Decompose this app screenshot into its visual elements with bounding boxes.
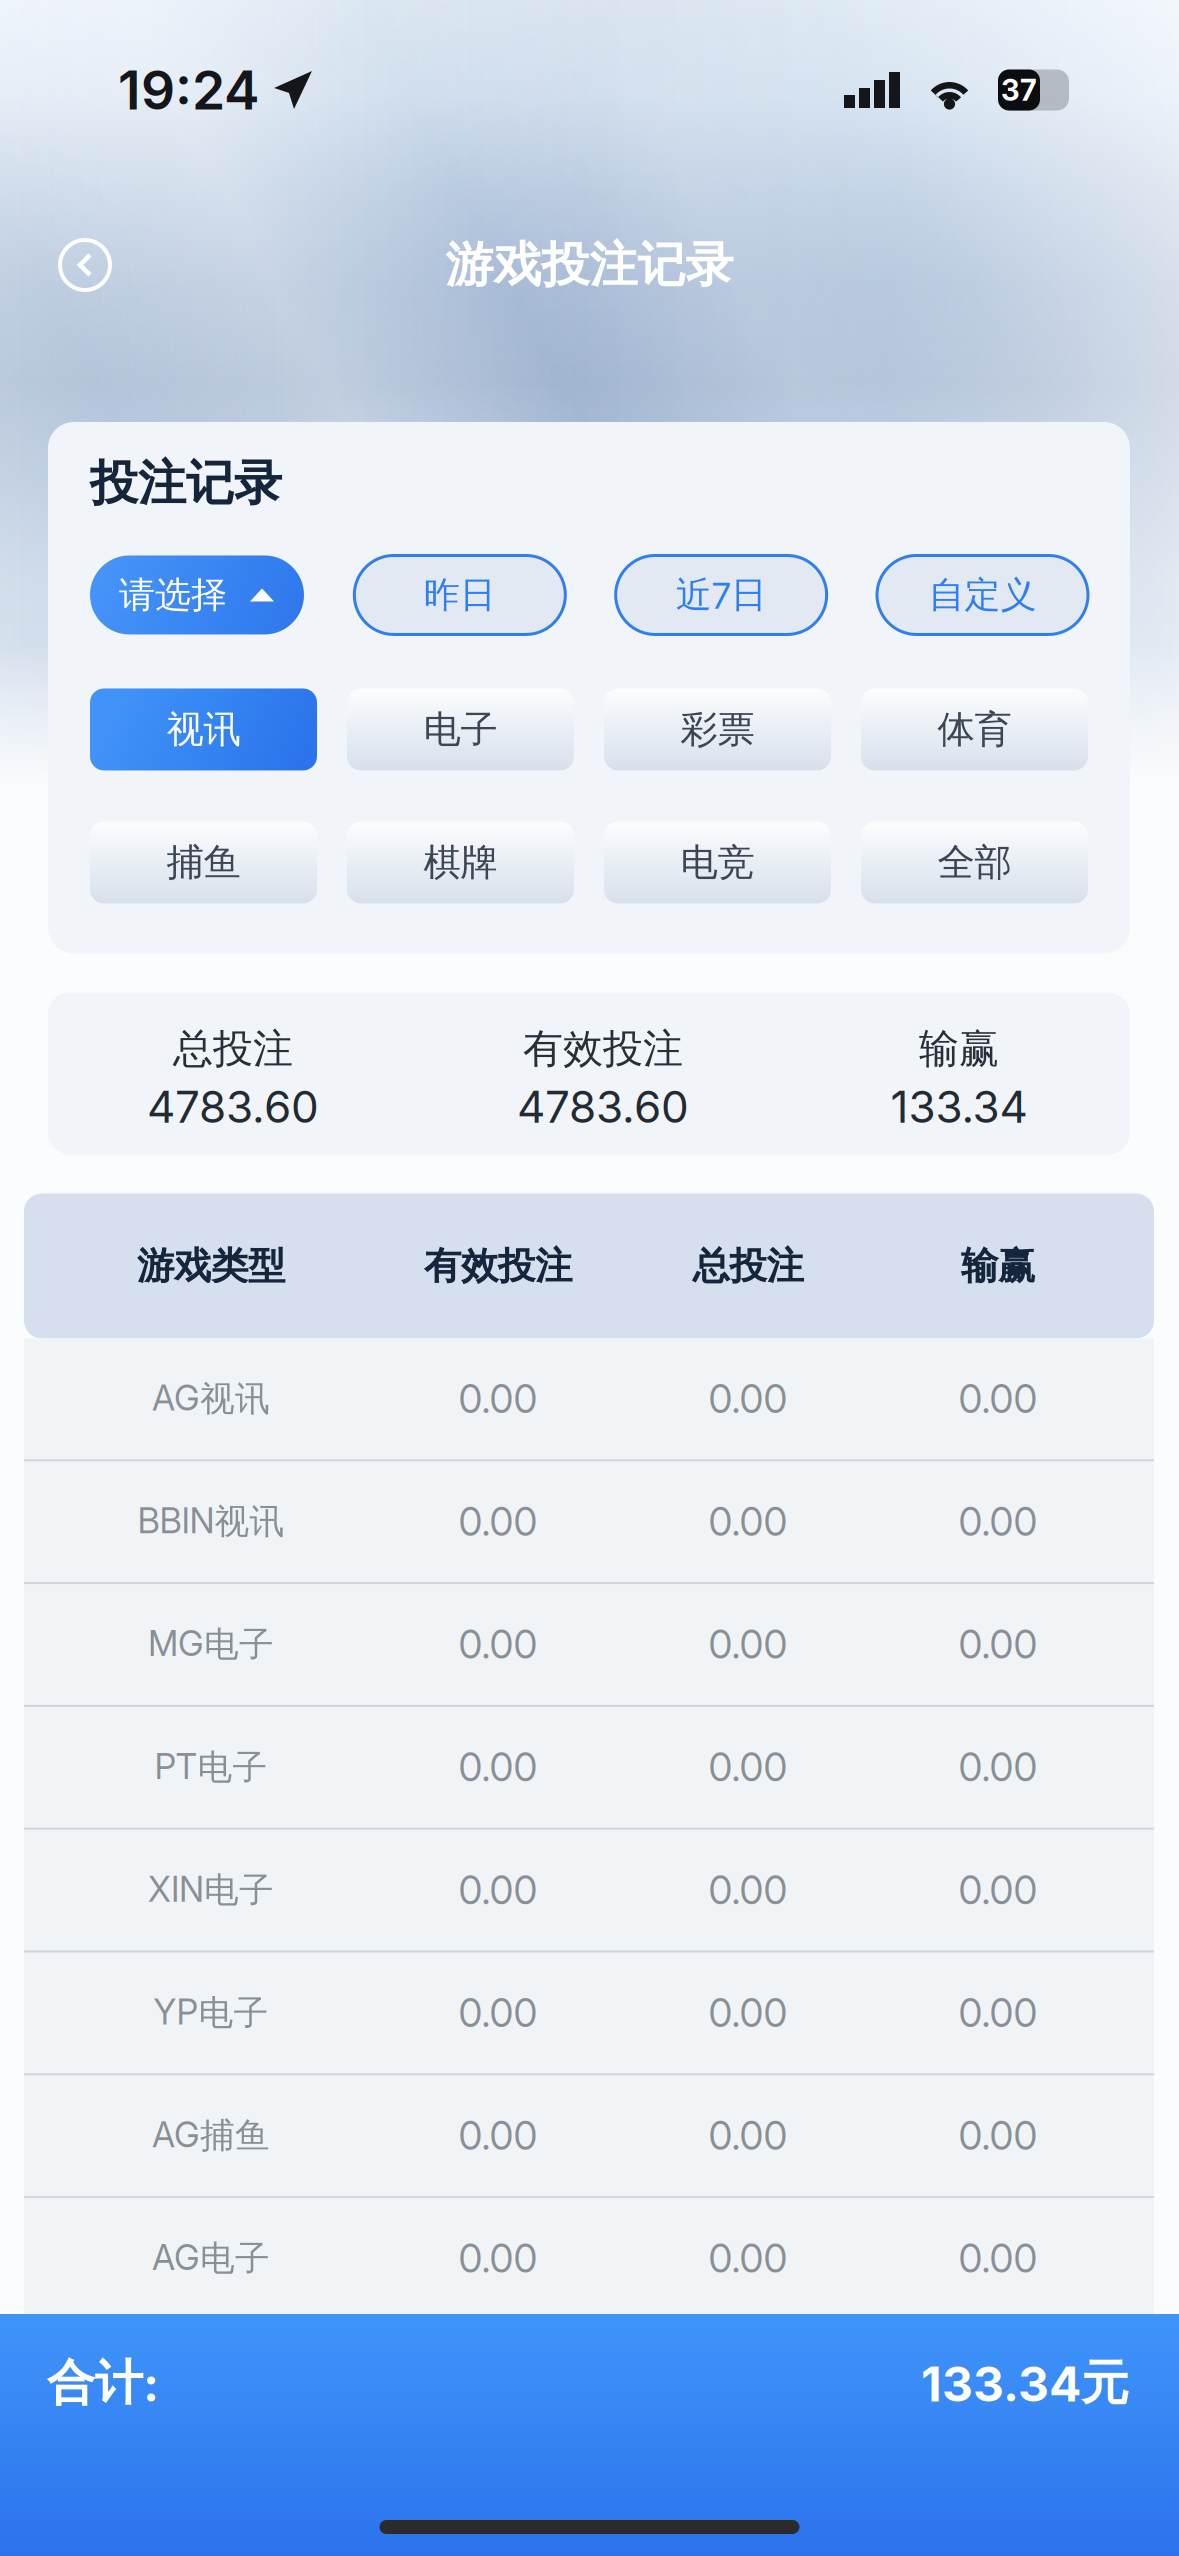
button[interactable]: 捕鱼 bbox=[90, 821, 317, 903]
button[interactable]: 自定义 bbox=[877, 555, 1088, 634]
staticText: 自定义 bbox=[928, 572, 1036, 618]
button[interactable]: 彩票 bbox=[604, 688, 831, 770]
staticText: 请选择 bbox=[119, 572, 227, 618]
staticText: 0.00 bbox=[958, 1867, 1037, 1913]
button[interactable]: 电子 bbox=[347, 688, 574, 770]
staticText: 4783.60 bbox=[147, 1080, 319, 1133]
staticText: 游戏投注记录 bbox=[445, 235, 733, 295]
staticText: 0.00 bbox=[708, 1744, 787, 1791]
staticText: MG电子 bbox=[148, 1622, 274, 1666]
button[interactable]: 棋牌 bbox=[347, 821, 574, 903]
staticText: 总投注 bbox=[173, 1024, 293, 1074]
button[interactable]: 体育 bbox=[861, 688, 1088, 770]
button[interactable]: 电竞 bbox=[604, 821, 831, 903]
staticText: 133.34 bbox=[890, 1080, 1027, 1133]
staticText: 彩票 bbox=[680, 706, 754, 753]
button[interactable]: 全部 bbox=[861, 821, 1088, 903]
staticText: 0.00 bbox=[708, 1989, 787, 2036]
staticText: 0.00 bbox=[708, 1498, 787, 1545]
staticText: 0.00 bbox=[458, 1989, 537, 2036]
staticText: 37 bbox=[1001, 72, 1037, 108]
staticText: 133.34元 bbox=[921, 2353, 1129, 2413]
staticText: 棋牌 bbox=[423, 839, 497, 886]
staticText: 0.00 bbox=[458, 1621, 537, 1668]
staticText: 有效投注 bbox=[523, 1024, 683, 1074]
staticText: 0.00 bbox=[958, 1744, 1037, 1791]
staticText: 0.00 bbox=[458, 2235, 537, 2282]
staticText: 0.00 bbox=[458, 1867, 537, 1913]
staticText: 0.00 bbox=[708, 1375, 787, 1422]
staticText: 捕鱼 bbox=[166, 839, 240, 886]
staticText: 0.00 bbox=[958, 1989, 1037, 2036]
staticText: 电竞 bbox=[680, 839, 754, 886]
staticText: AG视讯 bbox=[152, 1377, 270, 1421]
button[interactable]: 昨日 bbox=[354, 555, 565, 634]
staticText: 全部 bbox=[937, 839, 1011, 886]
staticText: 0.00 bbox=[958, 1375, 1037, 1422]
staticText: 输赢 bbox=[961, 1242, 1035, 1289]
staticText: 0.00 bbox=[958, 2112, 1037, 2159]
staticText: 19:24 bbox=[118, 58, 260, 122]
staticText: XIN电子 bbox=[148, 1868, 274, 1912]
staticText: 0.00 bbox=[708, 1867, 787, 1913]
staticText: 4783.60 bbox=[517, 1080, 689, 1133]
staticText: 0.00 bbox=[958, 1498, 1037, 1545]
staticText: 投注记录 bbox=[90, 453, 282, 513]
staticText: BBIN视讯 bbox=[137, 1500, 284, 1544]
staticText: AG电子 bbox=[152, 2236, 270, 2280]
staticText: 游戏类型 bbox=[137, 1242, 285, 1289]
button[interactable]: Back bbox=[44, 224, 126, 306]
staticText: 视讯 bbox=[166, 706, 240, 753]
staticText: 0.00 bbox=[958, 2235, 1037, 2282]
staticText: 有效投注 bbox=[424, 1242, 572, 1289]
staticText: 近7日 bbox=[676, 572, 767, 618]
staticText: 0.00 bbox=[708, 1621, 787, 1668]
staticText: 0.00 bbox=[458, 1498, 537, 1545]
staticText: 合计: bbox=[47, 2353, 159, 2413]
button[interactable]: 视讯 bbox=[90, 688, 317, 770]
staticText: 0.00 bbox=[708, 2235, 787, 2282]
staticText: PT电子 bbox=[154, 1745, 267, 1789]
staticText: 昨日 bbox=[424, 572, 496, 618]
button[interactable]: 请选择 bbox=[90, 555, 304, 634]
staticText: 输赢 bbox=[919, 1024, 999, 1074]
staticText: 0.00 bbox=[458, 1375, 537, 1422]
staticText: 体育 bbox=[937, 706, 1011, 753]
staticText: 总投注 bbox=[692, 1242, 803, 1289]
staticText: 0.00 bbox=[458, 2112, 537, 2159]
staticText: 0.00 bbox=[708, 2112, 787, 2159]
staticText: 电子 bbox=[423, 706, 497, 753]
staticText: AG捕鱼 bbox=[152, 2114, 270, 2158]
staticText: 0.00 bbox=[458, 1744, 537, 1791]
button[interactable]: 近7日 bbox=[616, 555, 827, 634]
staticText: 0.00 bbox=[958, 1621, 1037, 1668]
staticText: YP电子 bbox=[153, 1991, 268, 2035]
